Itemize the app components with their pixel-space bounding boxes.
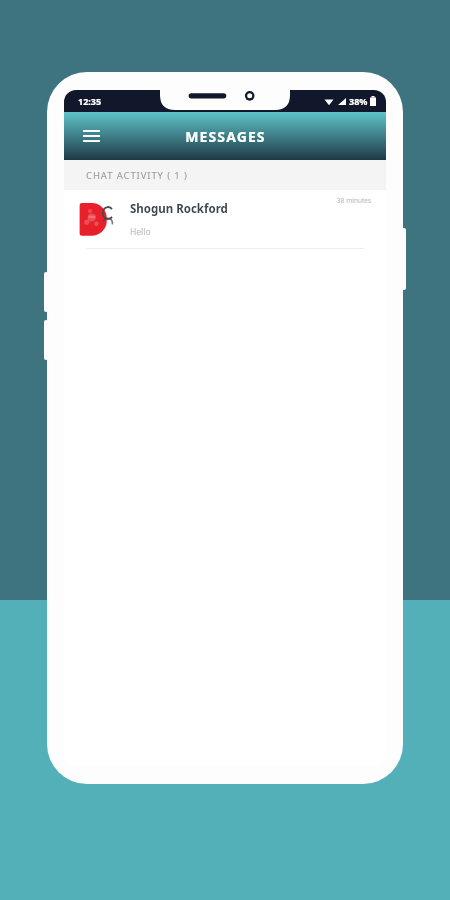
staticText: CHAT ACTIVITY ( 1 ) (86, 169, 188, 182)
staticText: Hello (130, 226, 151, 238)
button[interactable]: Open navigation menu (74, 119, 108, 153)
staticText: 38% (349, 95, 368, 107)
staticText: MESSAGES (185, 127, 266, 146)
staticText: Shogun Rockford (130, 201, 228, 217)
staticText: 38 minutes (337, 196, 372, 205)
staticText: 12:35 (78, 95, 102, 107)
button[interactable]: Shogun Rockford (64, 190, 386, 249)
